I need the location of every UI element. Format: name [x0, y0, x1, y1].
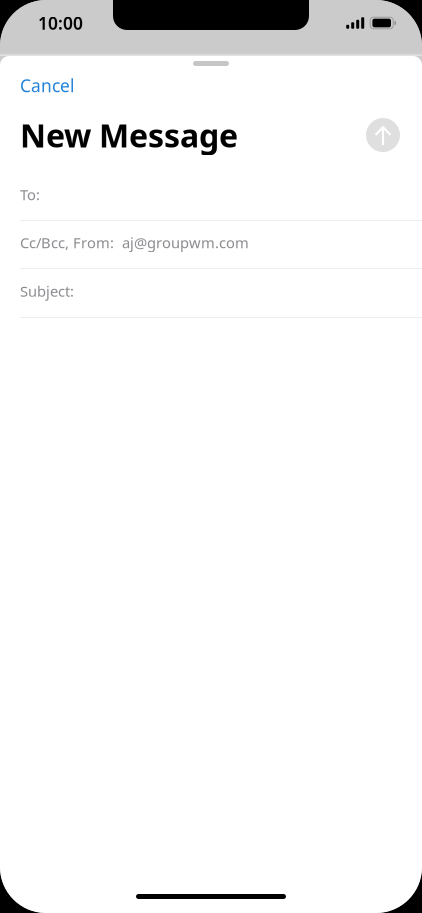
staticText: Subject:: [20, 281, 74, 301]
button[interactable]: To:: [0, 173, 422, 221]
button[interactable]: Send: [366, 118, 400, 152]
button[interactable]: Subject:: [0, 269, 422, 318]
button[interactable]: Cancel: [18, 69, 76, 102]
staticText: To:: [20, 185, 40, 204]
staticText: 10:00: [38, 11, 83, 34]
staticText: New Message: [20, 114, 238, 156]
staticText: Cc/Bcc, From:: [20, 233, 122, 252]
button[interactable]: Cc/Bcc, From:: [0, 221, 422, 269]
staticText: Cancel: [20, 74, 74, 97]
staticText: aj@groupwm.com: [122, 233, 249, 252]
